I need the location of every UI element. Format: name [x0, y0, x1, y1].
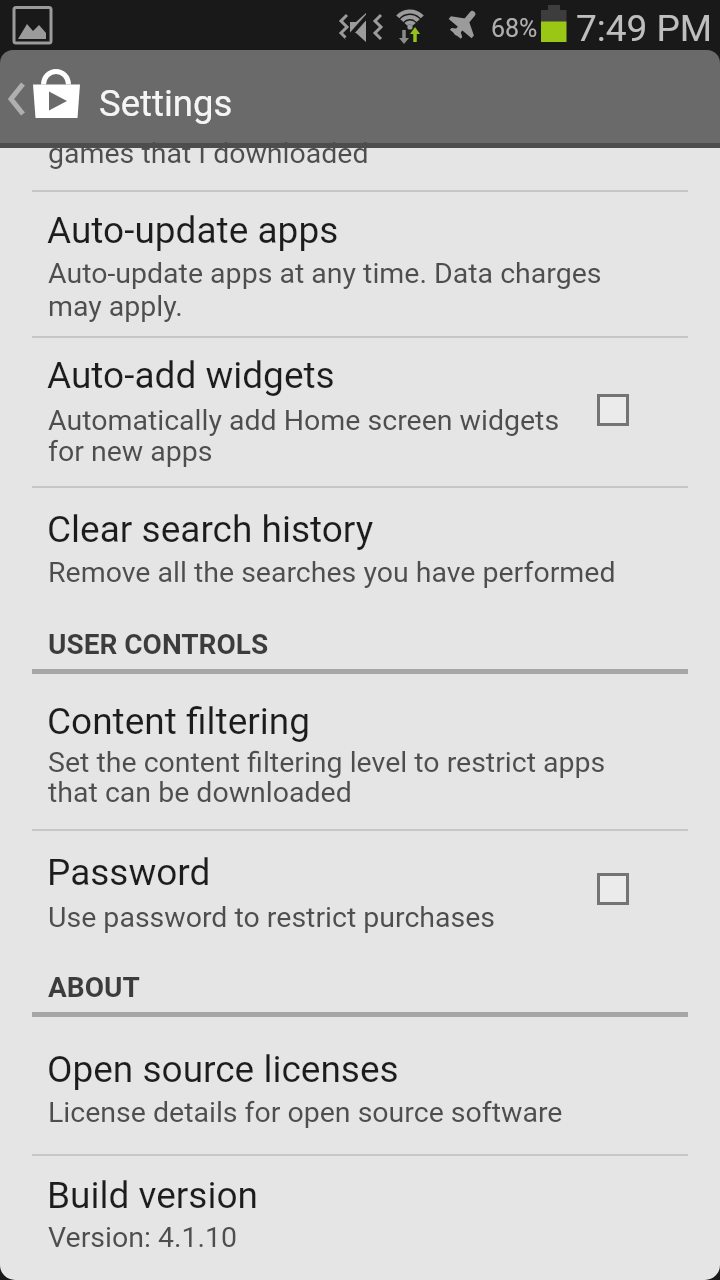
button[interactable] — [0, 148, 720, 190]
button[interactable] — [0, 338, 720, 484]
button[interactable] — [0, 50, 92, 143]
button[interactable] — [597, 873, 629, 905]
staticText: 7:49 PM — [576, 7, 713, 50]
staticText: Use password to restrict purchases — [48, 901, 496, 934]
button[interactable] — [0, 831, 720, 951]
staticText: Auto-add widgets — [47, 354, 335, 397]
staticText: Settings — [99, 82, 233, 125]
button[interactable] — [0, 1017, 720, 1154]
staticText: Password — [47, 851, 211, 894]
staticText: Automatically add Home screen widgets — [48, 404, 560, 437]
staticText: Build version — [47, 1174, 258, 1217]
button[interactable] — [0, 488, 720, 608]
staticText: may apply. — [48, 290, 183, 323]
staticText: 68% — [491, 14, 538, 43]
staticText: Auto-update apps — [47, 209, 339, 252]
button[interactable] — [0, 1156, 720, 1280]
staticText: that can be downloaded — [48, 776, 352, 809]
staticText: Clear search history — [47, 508, 374, 551]
staticText: Content filtering — [47, 700, 311, 743]
button[interactable] — [597, 394, 629, 426]
button[interactable] — [0, 674, 720, 829]
staticText: for new apps — [48, 435, 213, 468]
staticText: Set the content filtering level to restr… — [48, 746, 606, 779]
staticText: Auto-update apps at any time. Data charg… — [48, 257, 602, 290]
staticText: Version: 4.1.10 — [48, 1221, 238, 1254]
staticText: License details for open source software — [48, 1096, 563, 1129]
staticText: Open source licenses — [47, 1048, 399, 1091]
staticText: USER CONTROLS — [48, 628, 269, 661]
staticText: games that I downloaded — [48, 137, 369, 170]
button[interactable] — [0, 192, 720, 336]
staticText: Remove all the searches you have perform… — [48, 556, 616, 589]
staticText: ABOUT — [48, 971, 140, 1004]
